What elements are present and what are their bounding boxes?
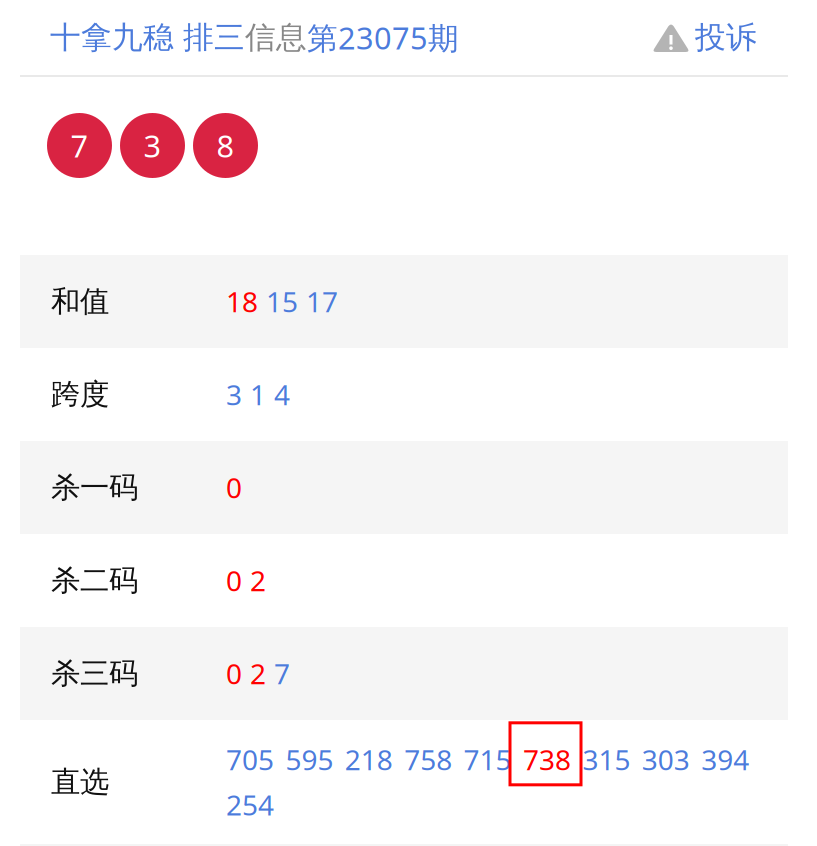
staticText: 7 xyxy=(70,125,88,166)
staticText: 315 xyxy=(582,741,630,778)
staticText: 0 xyxy=(226,469,242,506)
staticText: 8 xyxy=(216,125,234,166)
staticText: 杀二码 xyxy=(51,562,138,598)
staticText: 1 xyxy=(250,376,266,413)
staticText: 4 xyxy=(274,376,290,413)
staticText: 595 xyxy=(285,741,333,778)
staticText: 十拿九稳 排三 xyxy=(50,19,245,56)
staticText: 15 xyxy=(266,283,298,320)
staticText: 17 xyxy=(306,283,338,320)
staticText: 3 xyxy=(143,125,161,166)
staticText: 直选 xyxy=(51,764,109,800)
staticText: 7 xyxy=(274,655,290,692)
staticText: 信息 xyxy=(245,19,307,56)
staticText: 303 xyxy=(642,741,690,778)
staticText: 第23075期 xyxy=(307,17,459,58)
staticText: 投诉 xyxy=(695,19,757,56)
staticText: 和值 xyxy=(51,283,109,319)
button[interactable]: 投诉 xyxy=(652,9,757,66)
staticText: 2 xyxy=(250,562,266,599)
staticText: 758 xyxy=(404,741,452,778)
staticText: 跨度 xyxy=(51,376,109,412)
staticText: 杀一码 xyxy=(51,469,138,505)
staticText: 218 xyxy=(345,741,393,778)
staticText: 738 xyxy=(523,741,571,778)
staticText: 394 xyxy=(701,741,749,778)
staticText: 0 xyxy=(226,562,242,599)
staticText: 254 xyxy=(226,786,274,823)
staticText: 杀三码 xyxy=(51,655,138,691)
staticText: 715 xyxy=(464,741,512,778)
staticText: 18 xyxy=(226,283,258,320)
staticText: 0 xyxy=(226,655,242,692)
staticText: 705 xyxy=(226,741,274,778)
staticText: 3 xyxy=(226,376,242,413)
staticText: 2 xyxy=(250,655,266,692)
